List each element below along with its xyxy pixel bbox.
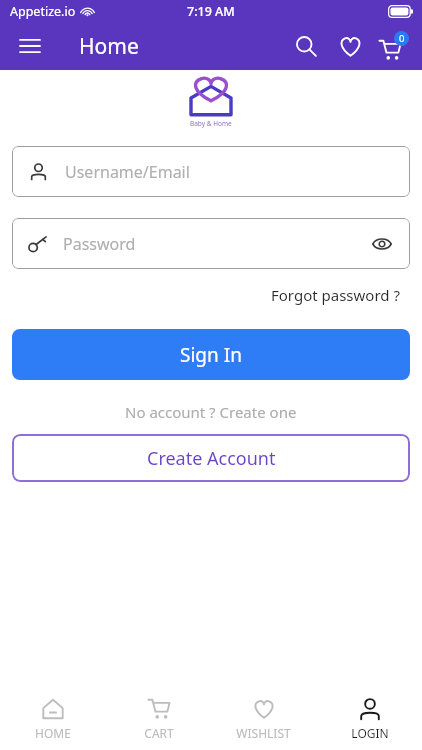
button[interactable]: CART xyxy=(111,688,206,750)
staticText: Username/Email xyxy=(65,161,190,183)
staticText: HOME xyxy=(35,725,71,741)
button[interactable]: Password xyxy=(12,218,410,269)
staticText: 0 xyxy=(399,32,405,45)
button[interactable]: WISHLIST xyxy=(216,688,311,750)
staticText: Create Account xyxy=(147,446,276,471)
button[interactable]: Username/Email xyxy=(12,146,410,197)
button[interactable]: LOGIN xyxy=(322,688,417,750)
staticText: Appetize.io xyxy=(10,3,76,20)
staticText: Baby & Home xyxy=(190,119,232,128)
staticText: Forgot password ? xyxy=(271,285,400,305)
staticText: Password xyxy=(63,233,136,255)
button[interactable]: Cart, 0 items xyxy=(372,24,416,68)
staticText: Sign In xyxy=(180,342,242,368)
button[interactable]: No account ? Create one xyxy=(125,402,297,422)
button[interactable]: Open navigation menu xyxy=(8,24,52,68)
button[interactable]: Sign In xyxy=(12,329,410,380)
staticText: CART xyxy=(144,725,174,741)
staticText: Home xyxy=(79,32,139,61)
staticText: WISHLIST xyxy=(236,725,291,741)
button[interactable]: HOME xyxy=(5,688,100,750)
button[interactable]: Forgot password ? xyxy=(267,283,404,307)
button[interactable]: Wishlist xyxy=(328,24,372,68)
staticText: 7:19 AM xyxy=(187,3,235,20)
button[interactable]: Show password xyxy=(362,224,402,264)
staticText: LOGIN xyxy=(351,725,389,741)
button[interactable]: Create Account xyxy=(12,434,410,482)
button[interactable]: Search xyxy=(284,24,328,68)
